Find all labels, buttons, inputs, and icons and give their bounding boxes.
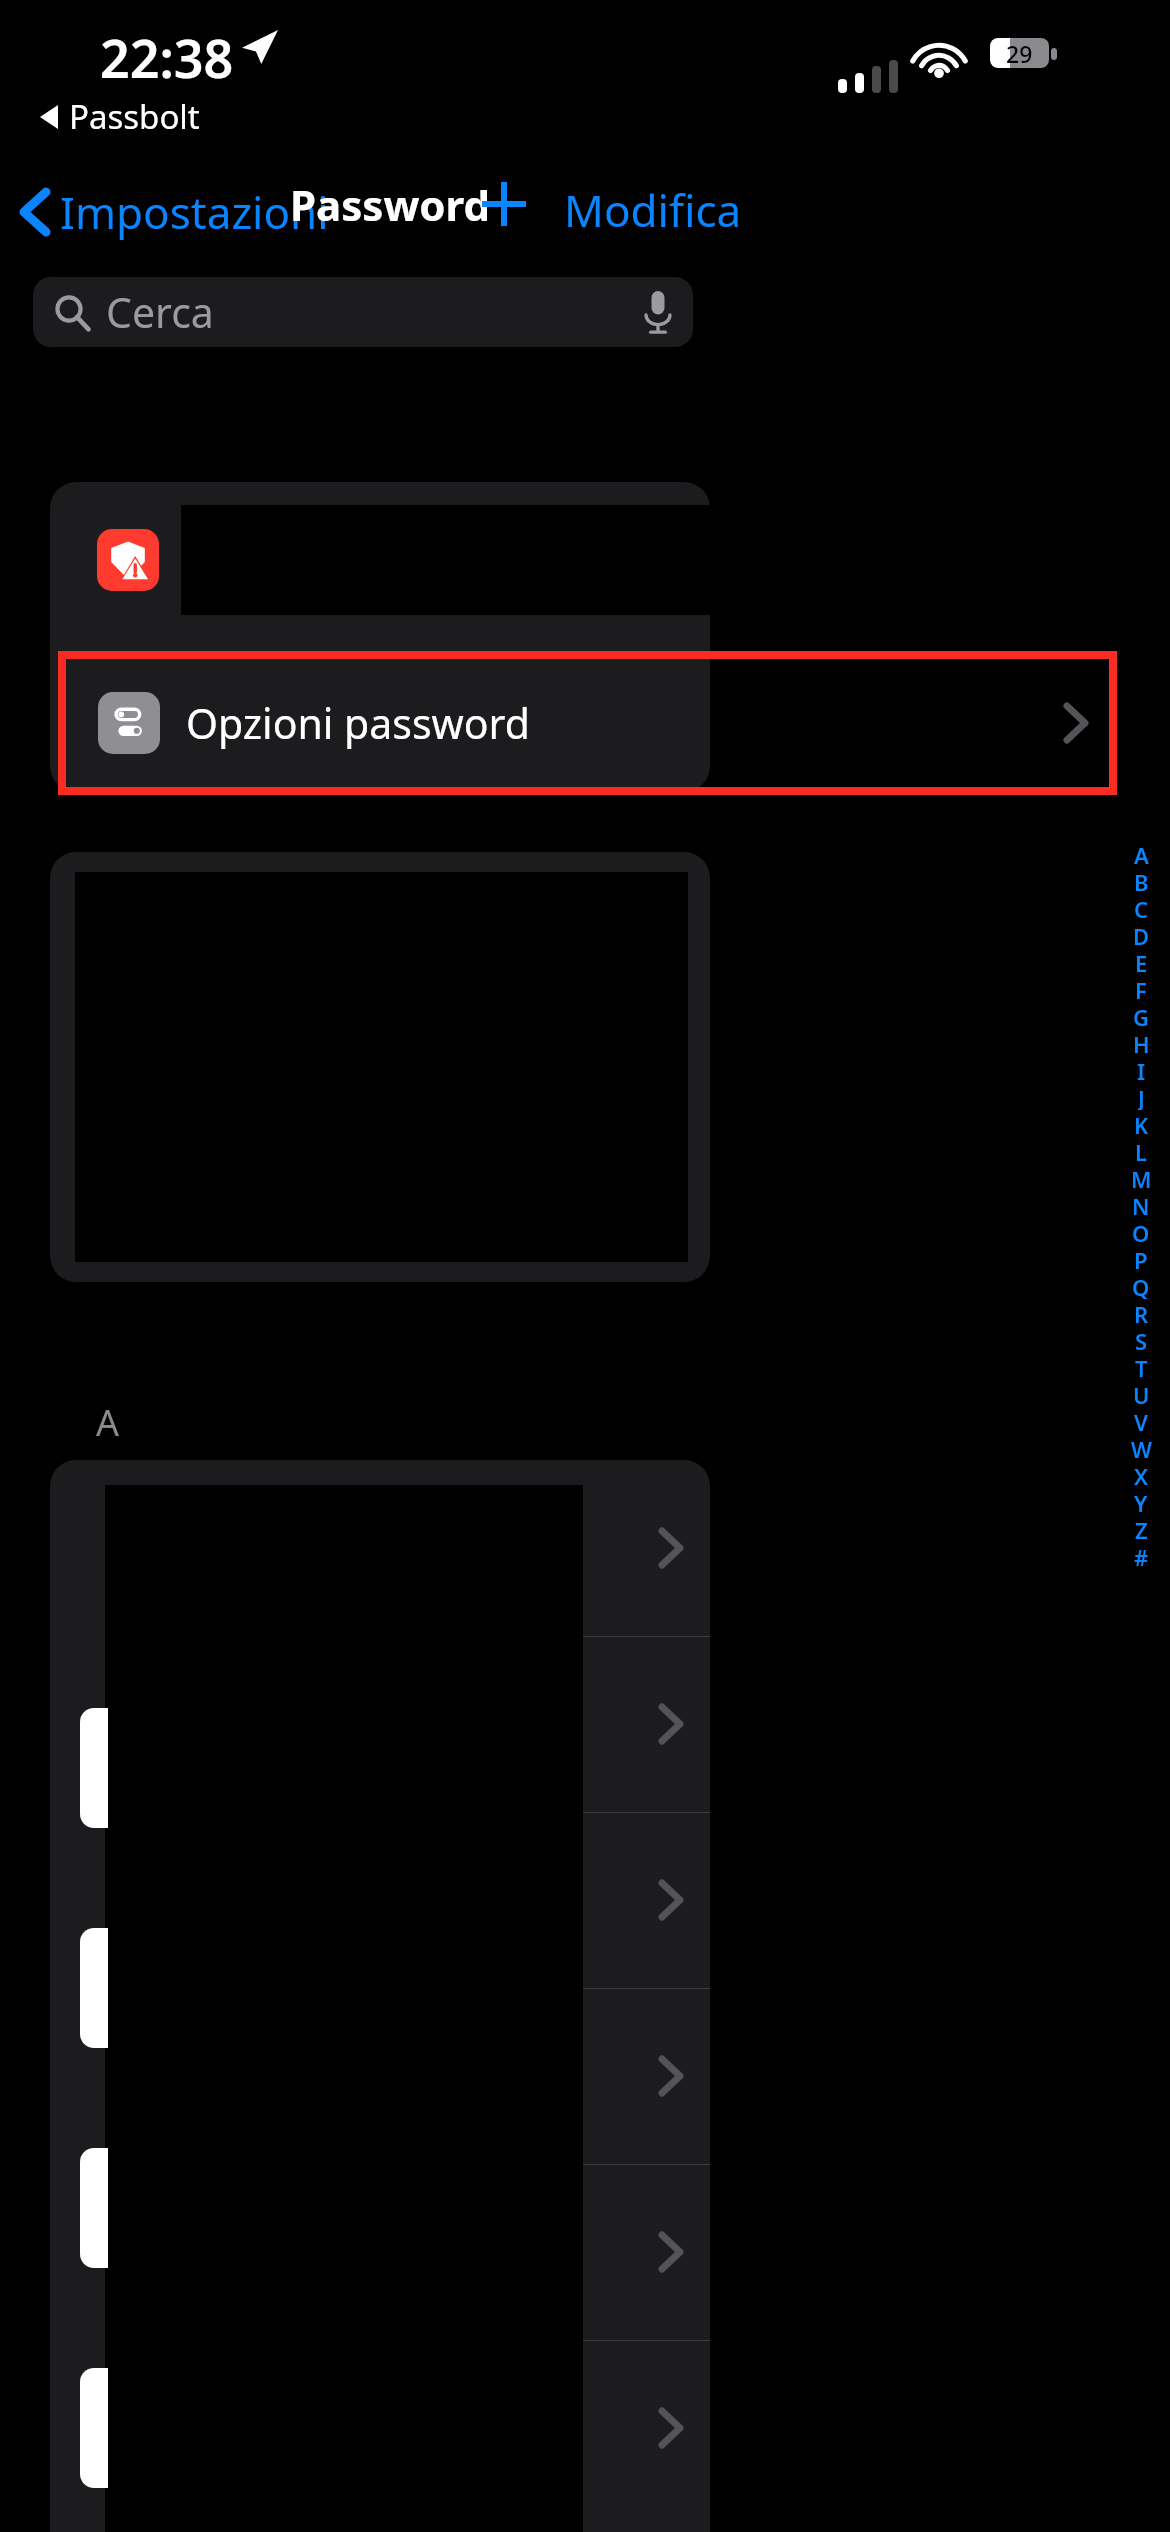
button[interactable] bbox=[50, 1812, 710, 1988]
staticText: X bbox=[1134, 1461, 1149, 1488]
staticText: Z bbox=[1135, 1515, 1148, 1542]
button[interactable]: Passbolt bbox=[40, 94, 200, 139]
staticText: Impostazioni bbox=[60, 182, 329, 242]
button[interactable] bbox=[50, 1460, 710, 1636]
staticText: 22:38 bbox=[100, 22, 234, 93]
staticText: F bbox=[1135, 975, 1147, 1002]
staticText: K bbox=[1134, 1110, 1149, 1137]
staticText: T bbox=[1135, 1353, 1148, 1380]
staticText: O bbox=[1132, 1218, 1150, 1245]
staticText: Modifica bbox=[564, 180, 742, 240]
staticText: B bbox=[1134, 867, 1149, 894]
button[interactable]: Impostazioni bbox=[22, 182, 329, 242]
button[interactable]: Modifica bbox=[564, 180, 742, 240]
staticText: N bbox=[1132, 1191, 1150, 1218]
staticText: I bbox=[1137, 1056, 1146, 1083]
staticText: L bbox=[1135, 1137, 1148, 1164]
staticText: R bbox=[1134, 1299, 1149, 1326]
staticText: U bbox=[1133, 1380, 1150, 1407]
staticText: Cerca bbox=[106, 284, 214, 340]
staticText: E bbox=[1135, 948, 1148, 975]
button[interactable]: Indice alfabetico bbox=[1126, 840, 1156, 1569]
staticText: Q bbox=[1132, 1272, 1150, 1299]
button[interactable] bbox=[50, 482, 710, 637]
button[interactable] bbox=[50, 2340, 710, 2516]
button[interactable] bbox=[50, 2164, 710, 2340]
staticText: J bbox=[1138, 1083, 1145, 1110]
staticText: M bbox=[1131, 1164, 1152, 1191]
button[interactable]: Opzioni password bbox=[62, 655, 1113, 791]
button[interactable] bbox=[50, 852, 710, 1282]
staticText: V bbox=[1134, 1407, 1148, 1434]
staticText: Passbolt bbox=[69, 94, 200, 139]
staticText: H bbox=[1133, 1029, 1150, 1056]
button[interactable]: Aggiungi bbox=[468, 168, 540, 240]
other: Dettatura bbox=[645, 291, 671, 333]
button[interactable] bbox=[50, 1636, 710, 1812]
staticText: Y bbox=[1134, 1488, 1148, 1515]
staticText: G bbox=[1133, 1002, 1149, 1029]
staticText: S bbox=[1135, 1326, 1148, 1353]
button[interactable]: Cerca bbox=[33, 277, 693, 347]
staticText: D bbox=[1133, 921, 1150, 948]
staticText: W bbox=[1131, 1434, 1152, 1461]
staticText: Password bbox=[290, 176, 491, 233]
staticText: A bbox=[1134, 840, 1149, 867]
button[interactable] bbox=[50, 1988, 710, 2164]
staticText: P bbox=[1134, 1245, 1148, 1272]
staticText: # bbox=[1134, 1542, 1149, 1569]
staticText: A bbox=[96, 1398, 120, 1447]
staticText: C bbox=[1134, 894, 1149, 921]
staticText: Opzioni password bbox=[186, 695, 530, 751]
staticText: 29 bbox=[1006, 38, 1033, 68]
